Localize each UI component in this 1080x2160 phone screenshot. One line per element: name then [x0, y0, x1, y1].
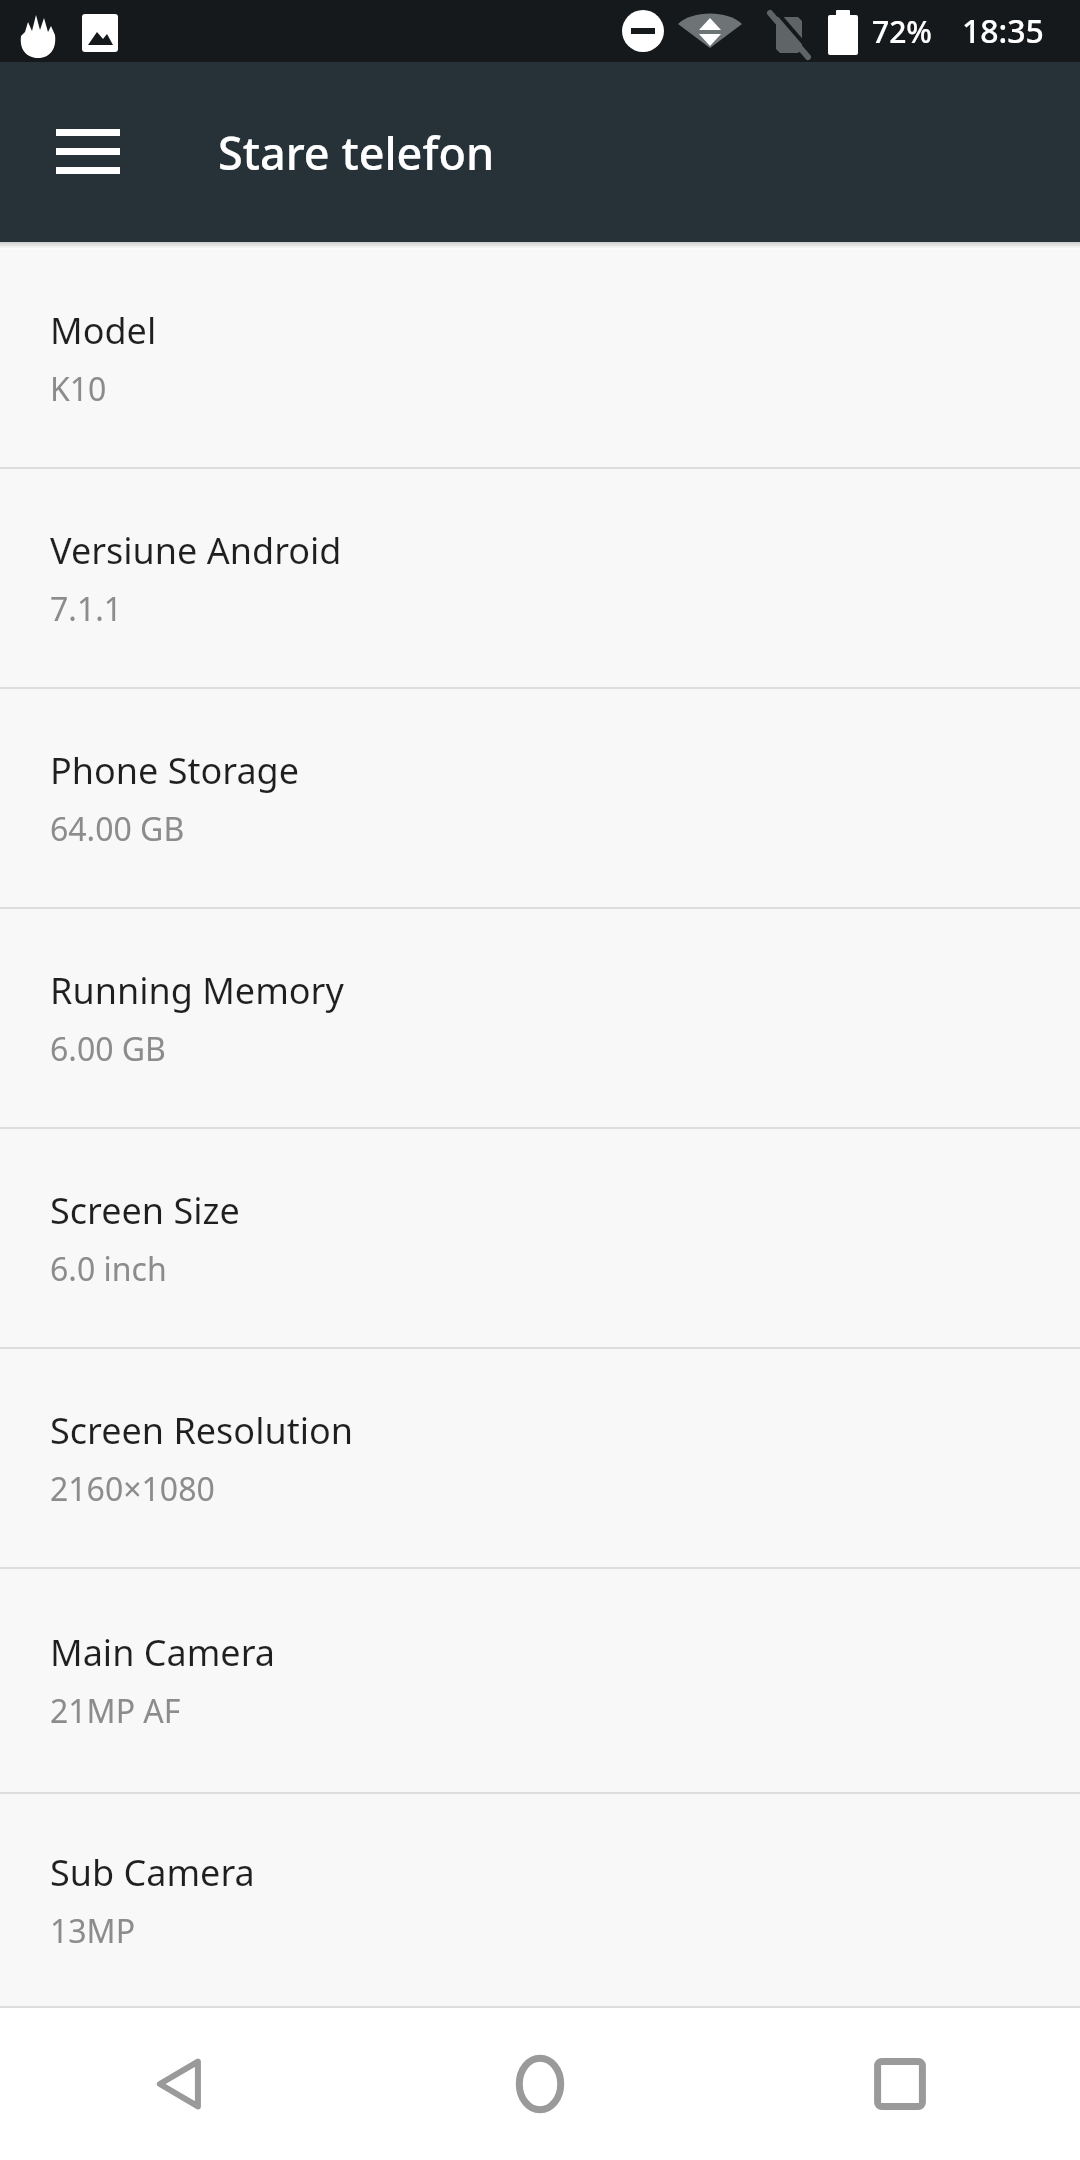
staticText: K10	[50, 367, 107, 411]
staticText: Running Memory	[50, 966, 344, 1015]
staticText: Screen Resolution	[50, 1406, 353, 1455]
button[interactable]: Back	[0, 2008, 360, 2160]
button[interactable]: Screen Resolution	[0, 1349, 1080, 1569]
staticText: Screen Size	[50, 1186, 240, 1235]
staticText: Versiune Android	[50, 526, 342, 575]
staticText: Main Camera	[50, 1628, 276, 1677]
staticText: Sub Camera	[50, 1848, 255, 1897]
button[interactable]: Recent apps	[720, 2008, 1080, 2160]
button[interactable]: Open navigation menu	[36, 100, 140, 204]
button[interactable]: Phone Storage	[0, 689, 1080, 909]
staticText: 72%	[872, 11, 932, 52]
staticText: Model	[50, 306, 157, 355]
button[interactable]: Model	[0, 249, 1080, 469]
staticText: 21MP AF	[50, 1689, 181, 1733]
button[interactable]: Home	[360, 2008, 720, 2160]
staticText: 18:35	[962, 9, 1044, 53]
staticText: 2160×1080	[50, 1467, 215, 1511]
button[interactable]: Versiune Android	[0, 469, 1080, 689]
button[interactable]: Running Memory	[0, 909, 1080, 1129]
staticText: 64.00 GB	[50, 807, 185, 851]
button[interactable]: Sub Camera	[0, 1794, 1080, 2008]
staticText: 6.0 inch	[50, 1247, 167, 1291]
staticText: Stare telefon	[218, 122, 495, 183]
button[interactable]: Main Camera	[0, 1569, 1080, 1794]
button[interactable]: Screen Size	[0, 1129, 1080, 1349]
staticText: Phone Storage	[50, 746, 300, 795]
staticText: 7.1.1	[50, 587, 123, 631]
staticText: 13MP	[50, 1909, 135, 1953]
staticText: 6.00 GB	[50, 1027, 166, 1071]
